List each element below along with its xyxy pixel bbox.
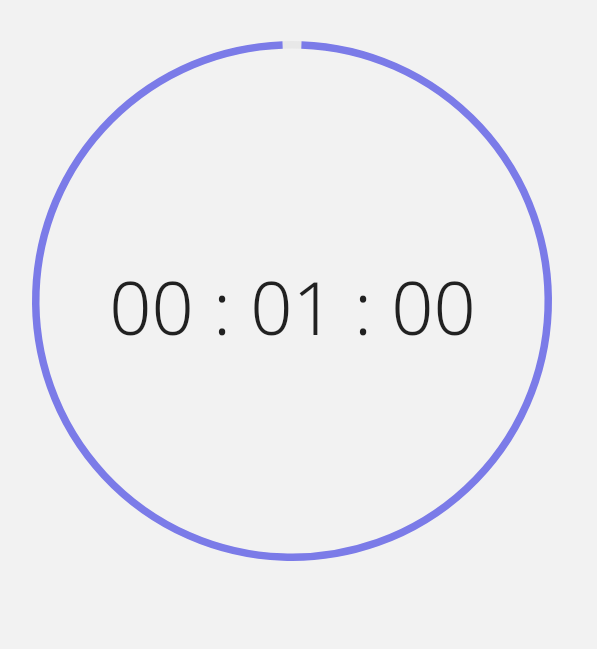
button[interactable]: Countdown timer progress (32, 41, 552, 561)
button[interactable]: 00 : 01 : 00 (109, 256, 476, 357)
